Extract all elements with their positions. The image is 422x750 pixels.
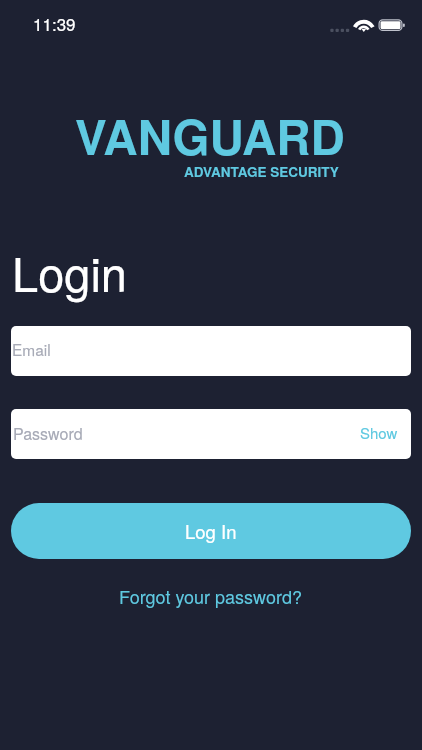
staticText: Log In	[185, 518, 237, 544]
staticText: ADVANTAGE SECURITY	[184, 162, 339, 181]
staticText: VANGUARD	[75, 102, 345, 170]
button[interactable]: Show	[347, 412, 411, 457]
button[interactable]: Email	[11, 326, 411, 376]
staticText: 11:39	[33, 11, 76, 35]
button[interactable]: Log In	[11, 503, 411, 559]
staticText: Login	[12, 238, 127, 305]
staticText: Show	[360, 422, 398, 443]
staticText: Forgot your password?	[119, 583, 302, 609]
other: Signal, Wi-Fi and battery status	[330, 13, 406, 32]
staticText: Email	[12, 338, 51, 360]
button[interactable]: Forgot your password?	[109, 575, 312, 617]
staticText: Password	[13, 422, 83, 445]
button[interactable]: Password	[11, 409, 411, 459]
